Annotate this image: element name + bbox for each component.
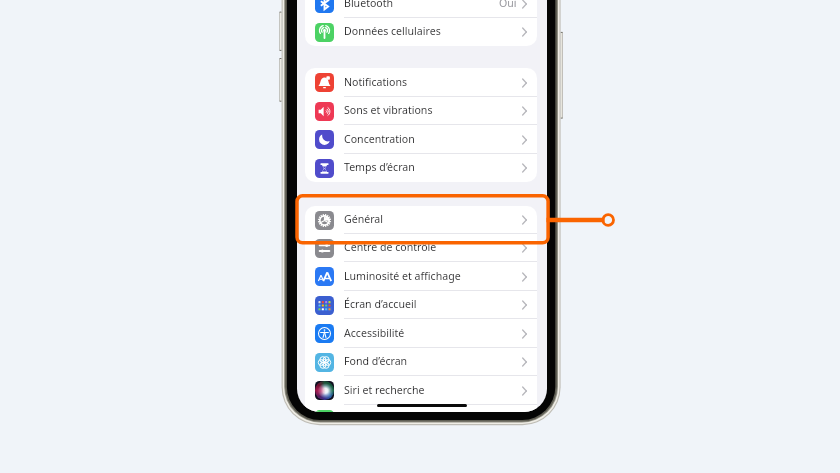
button[interactable]: Centre de contrôle bbox=[305, 234, 537, 262]
staticText: Concentration bbox=[344, 132, 415, 146]
staticText: Sons et vibrations bbox=[344, 103, 433, 117]
button[interactable]: Général bbox=[305, 206, 537, 234]
staticText: Fond d’écran bbox=[344, 354, 408, 368]
staticText: Siri et recherche bbox=[344, 383, 425, 397]
button[interactable]: Siri et recherche bbox=[305, 376, 537, 405]
staticText: Oui bbox=[499, 0, 517, 10]
staticText: Temps d’écran bbox=[344, 160, 415, 174]
staticText: Accessibilité bbox=[344, 326, 405, 340]
button[interactable]: Face ID et code bbox=[305, 405, 537, 412]
button[interactable]: Temps d’écran bbox=[305, 154, 537, 182]
button[interactable]: Notifications bbox=[305, 68, 537, 97]
staticText: Centre de contrôle bbox=[344, 240, 437, 254]
button[interactable]: Données cellulaires bbox=[305, 18, 537, 46]
staticText: Bluetooth bbox=[344, 0, 394, 10]
staticText: Notifications bbox=[344, 75, 408, 89]
staticText: Écran d’accueil bbox=[344, 297, 417, 311]
staticText: Données cellulaires bbox=[344, 24, 441, 38]
button[interactable]: Concentration bbox=[305, 125, 537, 154]
staticText: Général bbox=[344, 212, 384, 226]
button[interactable]: Fond d’écran bbox=[305, 348, 537, 376]
button[interactable]: Bluetooth bbox=[305, 0, 537, 18]
staticText: Luminosité et affichage bbox=[344, 269, 461, 283]
button[interactable]: Sons et vibrations bbox=[305, 97, 537, 125]
button[interactable]: Accessibilité bbox=[305, 319, 537, 348]
button[interactable]: Écran d’accueil bbox=[305, 291, 537, 319]
button[interactable]: Luminosité et affichage bbox=[305, 262, 537, 291]
